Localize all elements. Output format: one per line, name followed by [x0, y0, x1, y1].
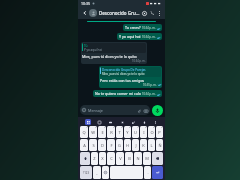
staticText: U [134, 130, 137, 135]
button[interactable]: Mensaje [80, 105, 150, 115]
staticText: Z [93, 156, 96, 161]
staticText: Tu crees? [125, 25, 141, 30]
button[interactable]: R [107, 126, 115, 138]
button[interactable]: M [143, 152, 151, 165]
button[interactable]: T [116, 126, 123, 138]
button[interactable]: Y yo aqui hoi [117, 33, 162, 40]
staticText: No te quiero comer mi culo [95, 91, 141, 96]
staticText: 2 [95, 126, 97, 129]
button[interactable]: Emoji [102, 166, 109, 179]
staticText: I [143, 130, 145, 135]
staticText: Y yo aqui hoi [84, 48, 102, 52]
button[interactable]: ?123 [80, 166, 92, 179]
staticText: 9 [153, 126, 155, 129]
button[interactable]: Keyboard menu [85, 119, 91, 125]
staticText: Tú [84, 44, 88, 48]
button[interactable]: A [80, 139, 88, 151]
button[interactable]: G [116, 139, 123, 151]
button[interactable]: Ñ [156, 139, 163, 151]
staticText: Mensaje [88, 108, 104, 113]
staticText: 8 [145, 126, 147, 129]
staticText: J [135, 143, 137, 148]
staticText: F [110, 143, 113, 148]
button[interactable]: B [125, 152, 133, 165]
button[interactable]: E [98, 126, 106, 138]
staticText: 3 [104, 126, 106, 129]
button[interactable]: Tool 2 [119, 119, 125, 125]
staticText: ?123 [83, 171, 90, 175]
staticText: Pero estás con tus amigos [100, 78, 145, 83]
button[interactable]: Video call [140, 9, 148, 17]
button[interactable]: H [124, 139, 131, 151]
button[interactable]: X [99, 152, 106, 165]
staticText: M [145, 156, 149, 161]
staticText: 1 [86, 126, 88, 129]
button[interactable]: Desconocido Grupo De Parejas [99, 66, 162, 88]
button[interactable]: Tool 3 [130, 119, 136, 125]
staticText: T [118, 130, 121, 135]
button[interactable]: Tool 0 [96, 119, 102, 125]
button[interactable]: Camera [143, 108, 148, 113]
button[interactable]: S [89, 139, 97, 151]
button[interactable]: . [144, 166, 151, 179]
staticText: , [96, 170, 98, 175]
button[interactable]: I [140, 126, 147, 138]
staticText: Mira, pues tú dices yo te lo quito [102, 72, 145, 76]
staticText: 4 [113, 126, 115, 129]
staticText: D [101, 143, 104, 148]
button[interactable]: Backspace [152, 152, 163, 165]
staticText: E [101, 130, 104, 135]
button[interactable]: O [148, 126, 155, 138]
button[interactable]: Tool 4 [141, 119, 147, 125]
button[interactable]: Enter [152, 166, 163, 179]
staticText: 10:35 p. m. [143, 83, 157, 87]
button[interactable]: Tool 5 [152, 119, 158, 125]
button[interactable]: Shift [80, 152, 90, 165]
button[interactable]: L [148, 139, 155, 151]
button[interactable]: No te quiero comer mi culo [93, 90, 162, 97]
button[interactable]: Y [124, 126, 131, 138]
staticText: B [128, 156, 131, 161]
staticText: A [83, 143, 86, 148]
staticText: V [119, 156, 122, 161]
staticText: 10:34 p. m. [142, 35, 156, 39]
button[interactable]: Tú [81, 42, 147, 64]
staticText: N [136, 156, 140, 161]
staticText: Desconocido Gru... [99, 10, 140, 16]
staticText: Y yo aqui hoi [119, 34, 141, 39]
button[interactable]: Attach [136, 108, 141, 113]
button[interactable]: D [98, 139, 106, 151]
button[interactable]: V [116, 152, 124, 165]
button[interactable]: Voice message [152, 105, 163, 116]
staticText: P [158, 130, 161, 135]
button[interactable]: More options [156, 10, 162, 16]
button[interactable]: Back [81, 9, 89, 17]
button[interactable]: N [134, 152, 142, 165]
button[interactable]: Space [110, 166, 143, 179]
staticText: 7 [137, 126, 139, 129]
staticText: 10:34 p. m. [142, 92, 156, 96]
button[interactable]: , [93, 166, 101, 179]
button[interactable]: Call [148, 9, 156, 17]
staticText: . [147, 170, 149, 175]
button[interactable]: C [107, 152, 115, 165]
staticText: L [150, 143, 153, 148]
staticText: R [110, 130, 113, 135]
button[interactable]: P [156, 126, 163, 138]
staticText: Ñ [158, 143, 162, 148]
button[interactable]: Tu crees? [123, 24, 162, 31]
staticText: H [126, 143, 129, 148]
button[interactable]: U [132, 126, 139, 138]
button[interactable]: Tool 1 [107, 119, 113, 125]
button[interactable]: K [140, 139, 147, 151]
staticText: W [91, 130, 95, 135]
staticText: Mira, pues tú dices yo te lo quito [82, 54, 137, 59]
button[interactable]: F [107, 139, 115, 151]
button[interactable]: W [89, 126, 97, 138]
button[interactable]: Q [80, 126, 88, 138]
staticText: Y [126, 130, 129, 135]
staticText: S [92, 143, 95, 148]
button[interactable]: J [132, 139, 139, 151]
button[interactable]: Z [91, 152, 98, 165]
staticText: G [118, 143, 121, 148]
